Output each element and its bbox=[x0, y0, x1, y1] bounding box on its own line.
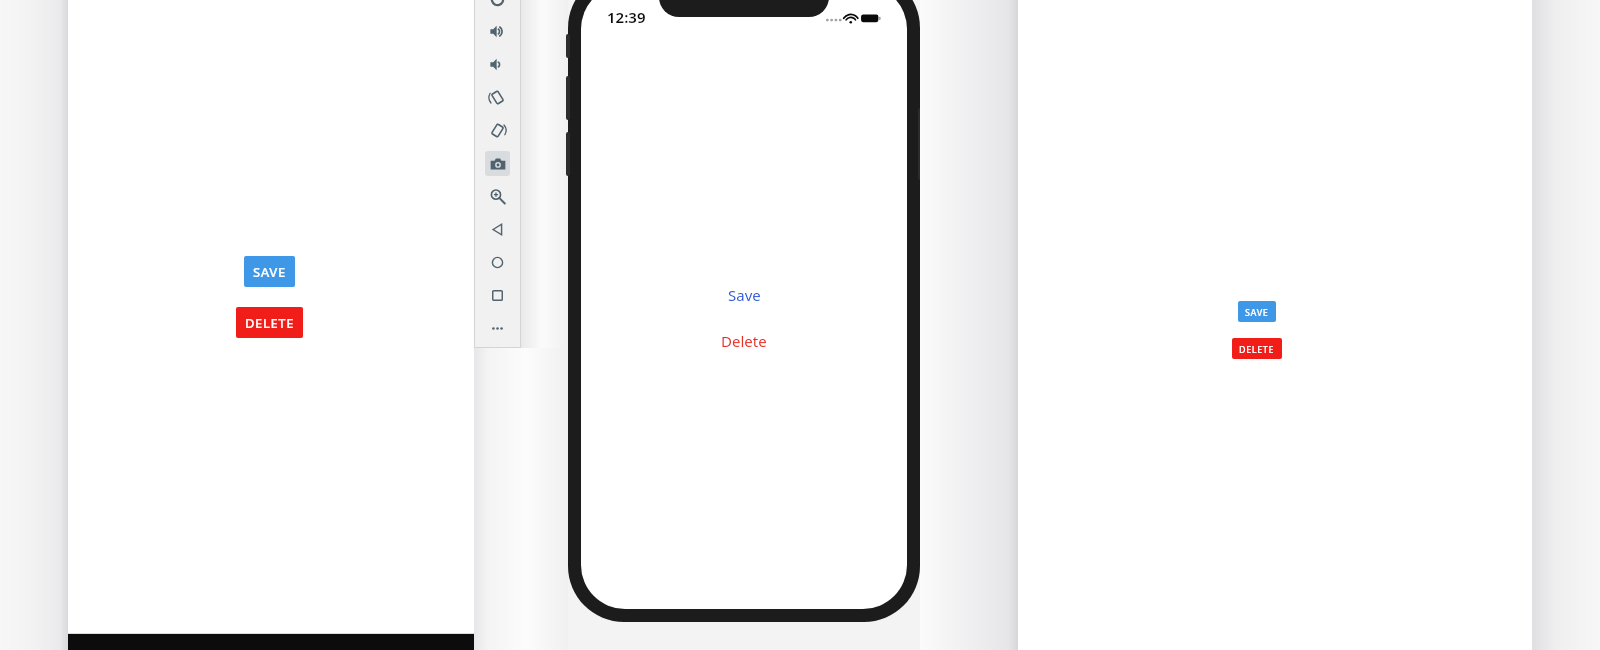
staticText: DELETE bbox=[245, 314, 295, 332]
button[interactable]: Take screenshot bbox=[474, 147, 521, 180]
button[interactable]: Power bbox=[474, 0, 521, 15]
staticText: Save bbox=[728, 285, 761, 305]
button[interactable]: DELETE bbox=[1232, 338, 1282, 359]
button[interactable]: Volume down bbox=[474, 48, 521, 81]
staticText: Delete bbox=[721, 331, 767, 351]
button[interactable]: DELETE bbox=[236, 307, 303, 338]
button[interactable]: Rotate left bbox=[474, 81, 521, 114]
button[interactable]: Volume up bbox=[474, 15, 521, 48]
staticText: 12:39 bbox=[607, 7, 646, 27]
staticText: SAVE bbox=[1245, 306, 1269, 318]
button[interactable]: Rotate right bbox=[474, 114, 521, 147]
button[interactable]: SAVE bbox=[1238, 301, 1276, 322]
button[interactable]: More bbox=[474, 312, 521, 345]
button[interactable]: Back bbox=[474, 213, 521, 246]
button[interactable]: Home bbox=[474, 246, 521, 279]
button[interactable]: SAVE bbox=[244, 256, 295, 287]
button[interactable]: Zoom in bbox=[474, 180, 521, 213]
staticText: DELETE bbox=[1239, 343, 1275, 355]
button[interactable]: Delete bbox=[707, 327, 781, 355]
button[interactable]: Save bbox=[714, 281, 775, 309]
staticText: SAVE bbox=[253, 263, 286, 281]
button[interactable]: Overview bbox=[474, 279, 521, 312]
